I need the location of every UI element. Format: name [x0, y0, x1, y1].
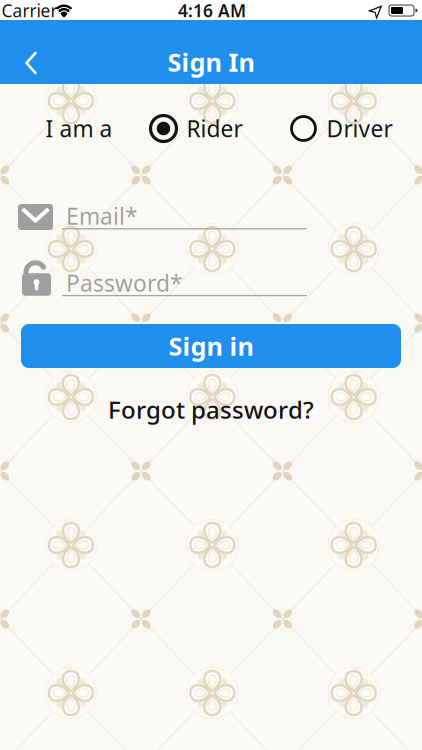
staticText: I am a — [45, 113, 112, 143]
staticText: 4:16 AM — [178, 0, 246, 22]
staticText: Sign in — [168, 329, 253, 363]
button[interactable]: Sign in — [21, 324, 401, 368]
staticText: Email* — [66, 201, 137, 231]
button[interactable]: Driver — [291, 113, 392, 143]
staticText: Rider — [186, 113, 242, 143]
staticText: Driver — [326, 113, 392, 143]
staticText: Sign In — [167, 45, 254, 79]
staticText: Password* — [66, 268, 182, 298]
staticText: Carrier — [1, 0, 57, 22]
button[interactable]: Rider — [150, 113, 242, 143]
staticText: Forgot password? — [108, 394, 314, 425]
button[interactable]: Back — [5, 40, 49, 84]
button[interactable]: Forgot password? — [108, 394, 314, 425]
